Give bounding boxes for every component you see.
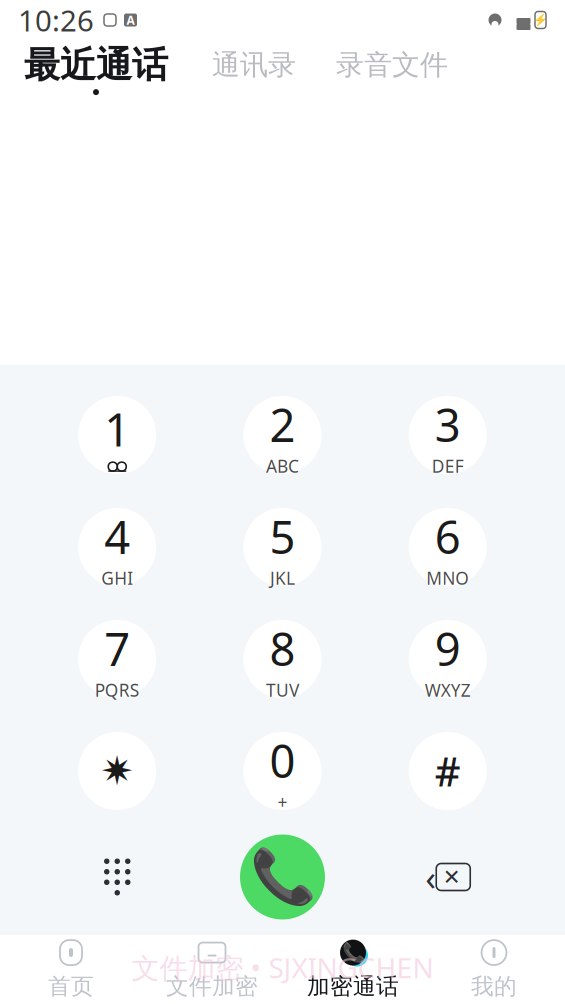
staticText: DEF: [432, 455, 464, 478]
button[interactable]: 2: [234, 387, 330, 483]
staticText: 9: [435, 618, 461, 679]
button[interactable]: 0: [234, 723, 330, 819]
staticText: ⚡: [533, 13, 548, 27]
staticText: 通讯录: [212, 48, 296, 82]
staticText: GHI: [101, 567, 133, 590]
staticText: 2: [269, 394, 295, 455]
staticText: 0: [269, 730, 295, 791]
button[interactable]: 通讯录: [208, 48, 300, 90]
staticText: ✷: [100, 748, 134, 794]
button[interactable]: 首页: [0, 936, 141, 1002]
staticText: 6: [435, 506, 461, 567]
staticText: 4: [104, 506, 130, 567]
button[interactable]: 1: [69, 387, 165, 483]
staticText: WXYZ: [425, 679, 471, 702]
button[interactable]: 3: [400, 387, 496, 483]
staticText: 📞: [341, 942, 364, 963]
staticText: 我的: [471, 973, 517, 1000]
staticText: 3: [435, 394, 461, 455]
staticText: 录音文件: [336, 48, 448, 82]
button[interactable]: Call: [234, 829, 330, 925]
staticText: ✕: [443, 865, 461, 889]
button[interactable]: 我的: [423, 936, 564, 1002]
staticText: TUV: [266, 679, 299, 702]
staticText: ‹: [425, 854, 436, 900]
button[interactable]: 8: [234, 611, 330, 707]
staticText: 5: [269, 506, 295, 567]
staticText: PQRS: [95, 679, 140, 702]
staticText: MNO: [426, 567, 469, 590]
button[interactable]: Hide keypad: [81, 841, 153, 913]
button[interactable]: Delete: [412, 841, 484, 913]
button[interactable]: 9: [400, 611, 496, 707]
button[interactable]: 6: [400, 499, 496, 595]
staticText: 文件加密 • SJXINGCHEN: [131, 949, 433, 986]
button[interactable]: 5: [234, 499, 330, 595]
staticText: 首页: [48, 973, 94, 1000]
staticText: #: [435, 744, 461, 797]
staticText: 文件加密: [166, 973, 258, 1000]
staticText: JKL: [270, 567, 295, 590]
staticText: 📞: [249, 846, 315, 907]
button[interactable]: 文件加密: [141, 936, 282, 1002]
staticText: 加密通话: [307, 973, 399, 1000]
button[interactable]: 📞: [282, 936, 423, 1002]
button[interactable]: ✷: [69, 723, 165, 819]
button[interactable]: 7: [69, 611, 165, 707]
staticText: 7: [104, 618, 130, 679]
staticText: +: [277, 791, 287, 814]
staticText: 1: [104, 399, 130, 459]
button[interactable]: 4: [69, 499, 165, 595]
staticText: A: [126, 12, 134, 28]
staticText: 8: [269, 618, 295, 679]
button[interactable]: 录音文件: [332, 48, 452, 90]
staticText: 10:26: [18, 0, 94, 39]
button[interactable]: #: [400, 723, 496, 819]
button[interactable]: 最近通话: [20, 43, 172, 95]
staticText: ABC: [266, 455, 299, 478]
staticText: 最近通话: [24, 43, 168, 87]
